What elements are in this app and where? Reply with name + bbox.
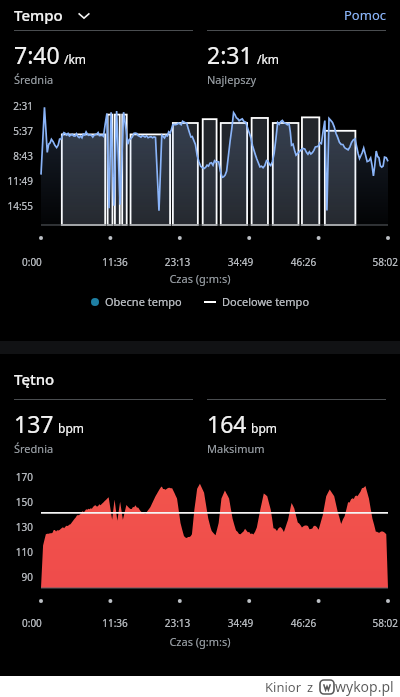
button[interactable]: Pomoc (344, 6, 386, 24)
staticText: 130 (0, 520, 33, 534)
staticText: 0:00 (22, 616, 84, 630)
staticText: Średnia (14, 72, 54, 87)
staticText: Czas (g:m:s) (0, 634, 400, 649)
staticText: 110 (0, 545, 33, 559)
staticText: 137 (14, 408, 54, 439)
staticText: 170 (0, 470, 33, 484)
staticText: Maksimum (207, 441, 265, 456)
other: Expand (76, 7, 92, 23)
staticText: z (307, 678, 314, 696)
staticText: 23:13 (146, 255, 209, 269)
other: wykop (320, 680, 334, 694)
staticText: 23:13 (146, 616, 209, 630)
staticText: 11:36 (84, 616, 146, 630)
staticText: Pomoc (344, 6, 386, 24)
staticText: Tempo (14, 5, 63, 25)
staticText: /km (257, 51, 280, 67)
staticText: Średnia (14, 441, 54, 456)
staticText: Tętno (14, 369, 55, 389)
staticText: 46:26 (272, 616, 335, 630)
staticText: 150 (0, 495, 33, 509)
staticText: 5:37 (0, 124, 33, 138)
staticText: Kinior (265, 678, 302, 696)
staticText: 164 (207, 408, 247, 439)
button[interactable]: Kinior (265, 677, 394, 696)
staticText: Najlepszy (207, 72, 257, 87)
staticText: 11:36 (84, 255, 146, 269)
staticText: wykop.pl (335, 677, 394, 696)
staticText: 11:49 (0, 174, 33, 188)
staticText: bpm (58, 420, 84, 436)
staticText: 8:43 (0, 149, 33, 163)
staticText: 34:49 (209, 616, 272, 630)
staticText: 58:02 (335, 616, 398, 630)
staticText: 2:31 (207, 39, 253, 70)
staticText: Obecne tempo (105, 294, 182, 309)
staticText: 2:31 (0, 99, 33, 113)
staticText: 0:00 (22, 255, 84, 269)
staticText: 90 (0, 570, 33, 584)
staticText: 46:26 (272, 255, 335, 269)
button[interactable]: Tempo (14, 5, 92, 25)
button[interactable]: Tętno (14, 369, 400, 389)
staticText: 34:49 (209, 255, 272, 269)
staticText: 7:40 (14, 39, 60, 70)
staticText: bpm (251, 420, 277, 436)
staticText: Docelowe tempo (222, 294, 310, 309)
staticText: 58:02 (335, 255, 398, 269)
staticText: Czas (g:m:s) (0, 271, 400, 286)
staticText: 14:55 (0, 199, 33, 213)
staticText: /km (64, 51, 87, 67)
